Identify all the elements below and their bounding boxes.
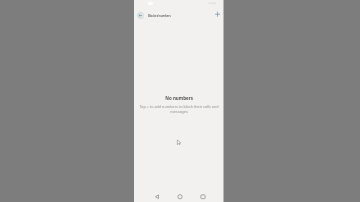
button[interactable] bbox=[136, 11, 144, 19]
staticText: Tap + to add numbers to block their call… bbox=[139, 103, 218, 113]
button[interactable] bbox=[213, 10, 222, 19]
staticText: No numbers bbox=[165, 95, 193, 102]
staticText: Blocked numbers bbox=[148, 14, 171, 18]
button[interactable] bbox=[153, 193, 161, 201]
button[interactable] bbox=[199, 193, 207, 201]
button[interactable] bbox=[176, 193, 184, 201]
